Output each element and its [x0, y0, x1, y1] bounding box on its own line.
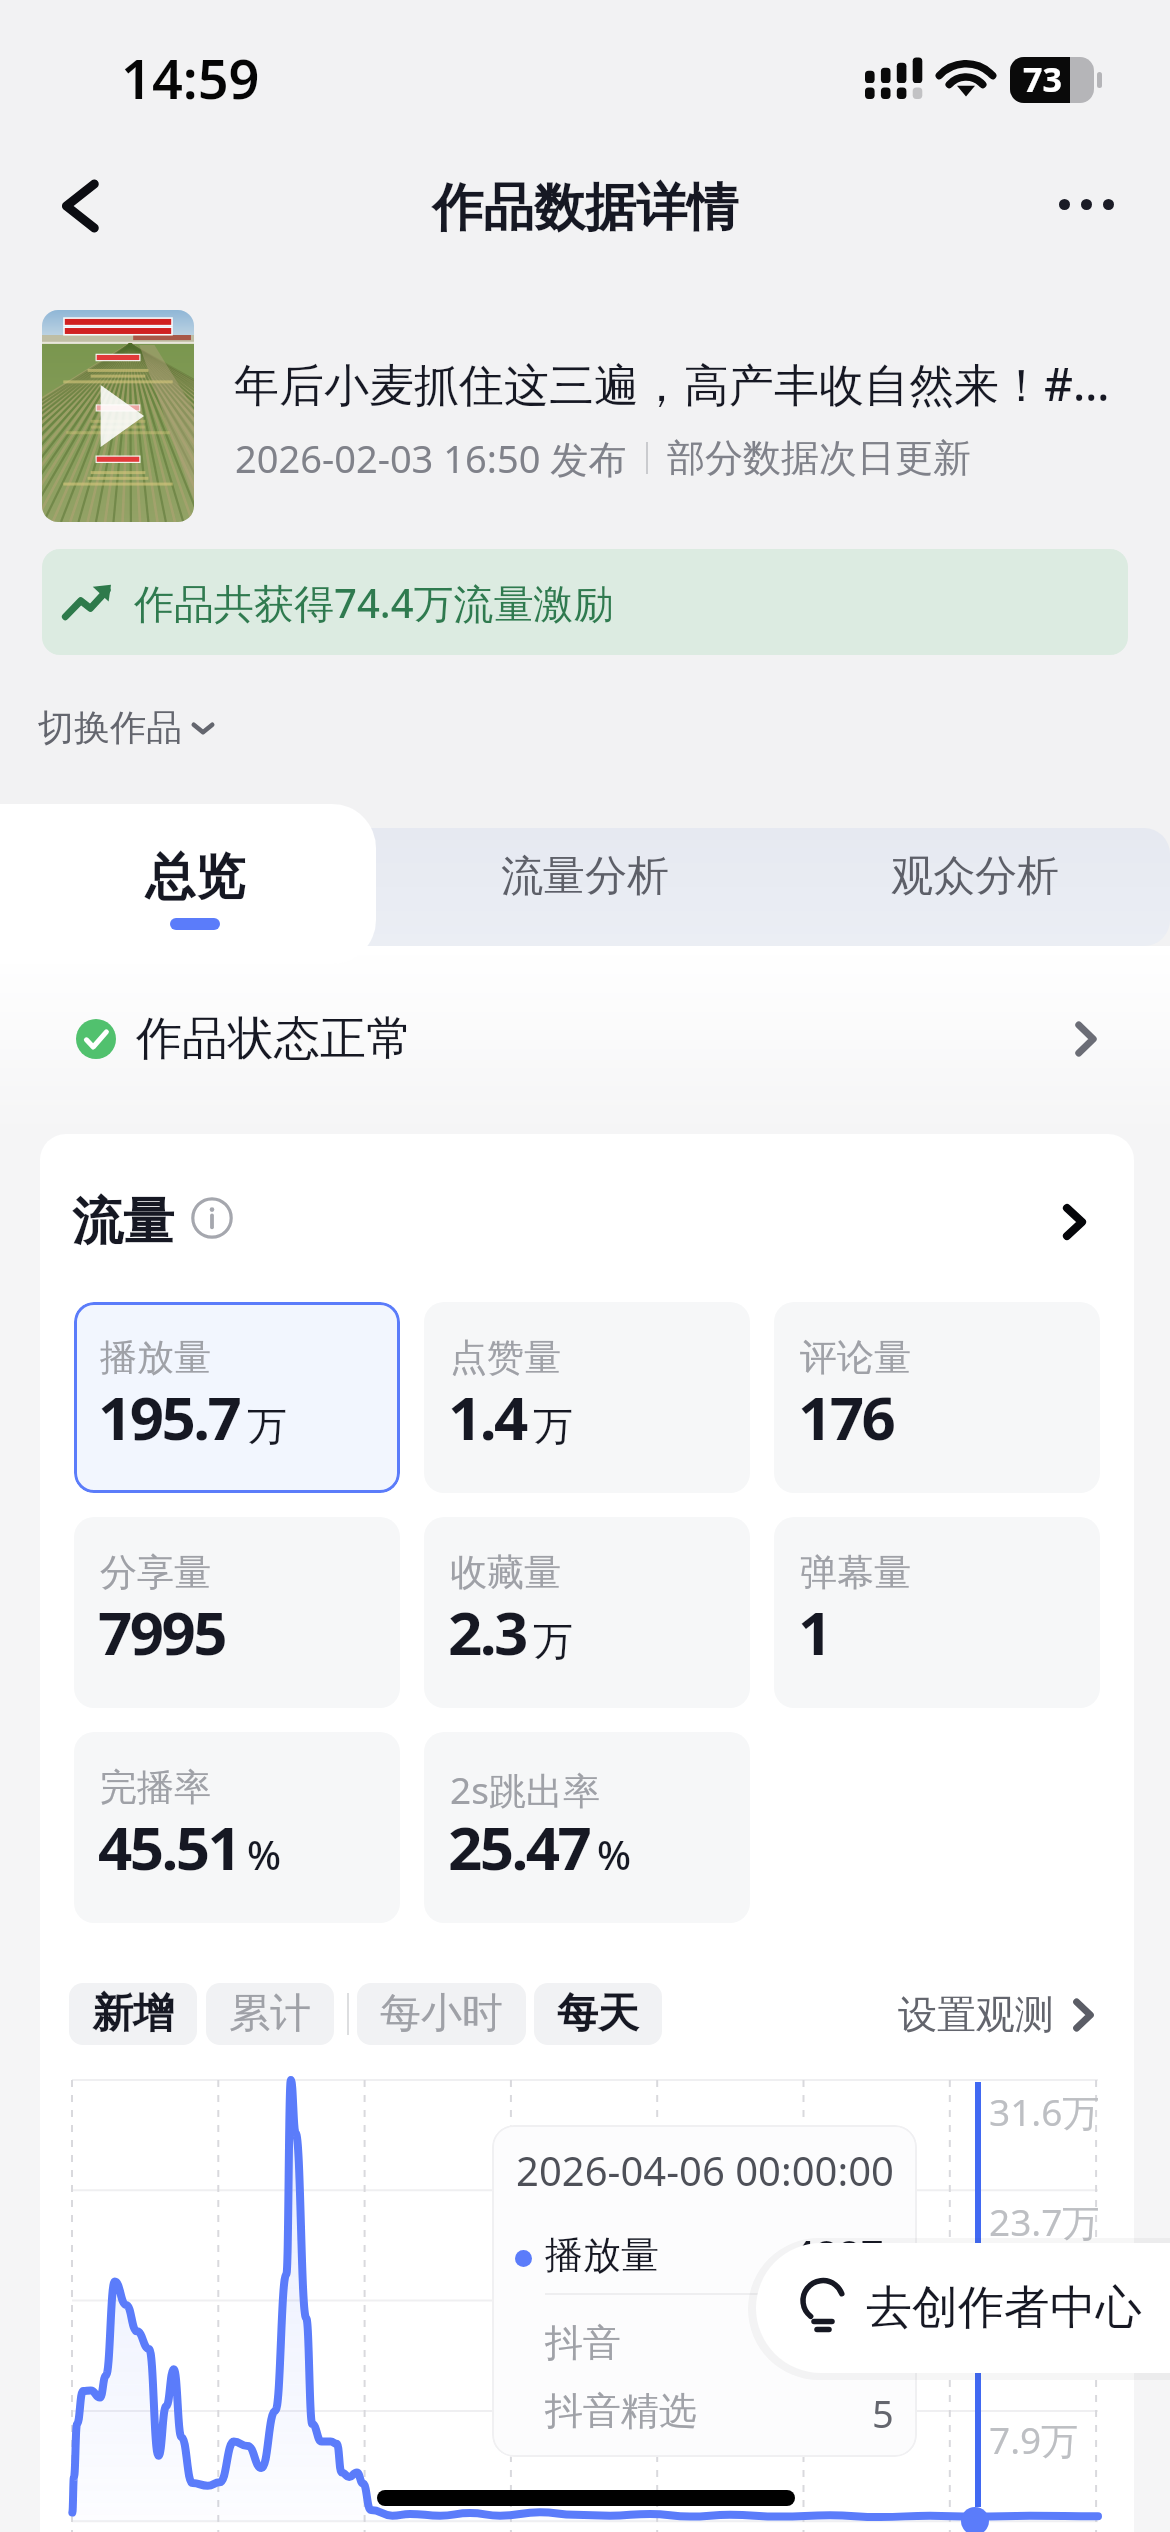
button[interactable]: 播放量: [74, 1302, 400, 1493]
staticText: 每天: [557, 1988, 639, 2040]
staticText: 7.9万: [989, 2414, 1079, 2465]
staticText: 累计: [229, 1988, 311, 2040]
staticText: 万: [533, 1401, 573, 1451]
staticText: %: [247, 1827, 282, 1881]
staticText: 195.7: [98, 1376, 240, 1458]
staticText: 万: [533, 1616, 573, 1666]
staticText: 2026-02-03 16:50 发布: [235, 432, 627, 484]
button[interactable]: 收藏量: [424, 1517, 750, 1708]
staticText: 2026-04-06 00:00:00: [516, 2143, 894, 2197]
staticText: 73: [1023, 56, 1062, 102]
button[interactable]: 总览: [0, 804, 376, 964]
button[interactable]: Back: [25, 148, 135, 264]
button[interactable]: More options: [1028, 146, 1144, 262]
staticText: 176: [798, 1376, 894, 1458]
staticText: 观众分析: [891, 850, 1059, 903]
staticText: 每小时: [380, 1988, 503, 2040]
staticText: 流量分析: [501, 850, 669, 903]
staticText: 23.7万: [989, 2196, 1100, 2247]
staticText: 7995: [98, 1591, 225, 1673]
button[interactable]: 设置观测: [898, 1990, 1093, 2039]
staticText: 作品数据详情: [432, 176, 738, 240]
button[interactable]: 切换作品: [38, 705, 214, 750]
button[interactable]: 年后小麦抓住这三遍，高产丰收自然来！#…: [0, 300, 1170, 540]
button[interactable]: 新增: [69, 1983, 197, 2045]
staticText: 作品状态正常: [136, 1010, 412, 1068]
staticText: 4887: [792, 2227, 884, 2281]
staticText: %: [597, 1827, 632, 1881]
staticText: 点赞量: [450, 1334, 561, 1381]
button[interactable]: 2s跳出率: [424, 1732, 750, 1923]
staticText: 切换作品: [38, 705, 182, 750]
button[interactable]: 累计: [206, 1983, 334, 2045]
staticText: 去创作者中心: [866, 2279, 1142, 2337]
button[interactable]: 观众分析: [776, 817, 1170, 935]
staticText: 1: [798, 1591, 830, 1673]
staticText: 抖音精选: [545, 2387, 697, 2435]
button[interactable]: 完播率: [74, 1732, 400, 1923]
staticText: 流量: [72, 1190, 174, 1254]
button[interactable]: 每天: [534, 1983, 662, 2045]
staticText: 年后小麦抓住这三遍，高产丰收自然来！#…: [234, 353, 1110, 414]
staticText: 作品共获得74.4万流量激励: [134, 575, 614, 630]
button[interactable]: 流量: [40, 1156, 1134, 1288]
staticText: 播放量: [100, 1334, 211, 1381]
staticText: 总览: [145, 846, 245, 909]
button[interactable]: 评论量: [774, 1302, 1100, 1493]
staticText: 2s跳出率: [450, 1764, 600, 1815]
staticText: 45.51: [98, 1806, 240, 1888]
staticText: 新增: [92, 1988, 174, 2040]
staticText: 25.47: [448, 1806, 590, 1888]
staticText: 收藏量: [450, 1549, 561, 1596]
staticText: 1.4: [448, 1376, 526, 1458]
button[interactable]: 分享量: [74, 1517, 400, 1708]
staticText: 播放量: [545, 2231, 659, 2279]
staticText: 31.6万: [989, 2086, 1100, 2137]
staticText: 评论量: [800, 1334, 911, 1381]
staticText: 万: [247, 1401, 287, 1451]
button[interactable]: 去创作者中心: [756, 2243, 1170, 2373]
staticText: 2.3: [448, 1591, 526, 1673]
button[interactable]: 点赞量: [424, 1302, 750, 1493]
button[interactable]: 弹幕量: [774, 1517, 1100, 1708]
staticText: 弹幕量: [800, 1549, 911, 1596]
staticText: 抖音: [545, 2319, 621, 2367]
button[interactable]: 作品共获得74.4万流量激励: [42, 549, 1128, 655]
staticText: 5: [872, 2387, 894, 2439]
button[interactable]: 作品状态正常: [0, 946, 1170, 1132]
staticText: 设置观测: [898, 1990, 1054, 2039]
staticText: 完播率: [100, 1764, 211, 1811]
button[interactable]: 流量分析: [386, 817, 783, 935]
staticText: 分享量: [100, 1549, 211, 1596]
staticText: 14:59: [121, 41, 260, 115]
button[interactable]: 每小时: [357, 1983, 526, 2045]
staticText: 部分数据次日更新: [667, 434, 971, 482]
